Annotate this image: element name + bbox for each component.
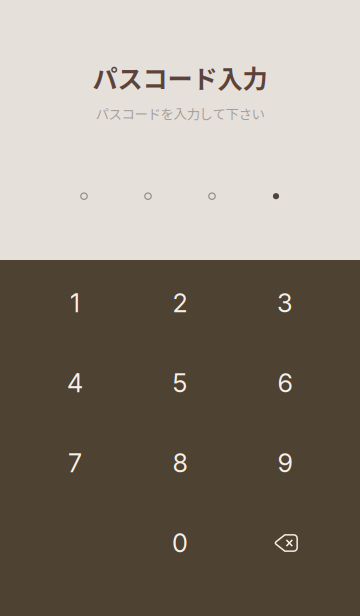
staticText: 2 [172,288,187,318]
button[interactable]: 5 [127,343,232,423]
button[interactable]: Delete [232,503,337,583]
button[interactable]: 9 [232,423,337,503]
button[interactable]: 1 [22,263,127,343]
button[interactable]: 4 [22,343,127,423]
button[interactable]: 0 [127,503,232,583]
staticText: 6 [277,368,292,398]
staticText: 4 [67,368,83,398]
staticText: 7 [68,448,82,478]
staticText: 9 [277,448,292,478]
staticText: 5 [172,368,187,398]
button[interactable]: 8 [127,423,232,503]
staticText: 1 [70,288,80,318]
button[interactable]: 2 [127,263,232,343]
button[interactable]: 7 [22,423,127,503]
staticText: パスコードを入力して下さい [95,104,264,123]
staticText: 0 [172,528,188,558]
button[interactable]: 3 [232,263,337,343]
button[interactable]: 6 [232,343,337,423]
staticText: 3 [277,288,293,318]
staticText: 8 [172,448,187,478]
staticText: パスコード入力 [92,59,267,95]
